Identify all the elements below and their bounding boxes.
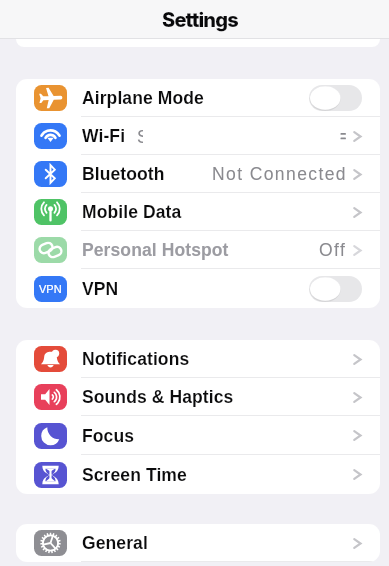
staticText: VPN (82, 279, 119, 299)
staticText: Personal Hotspot (82, 240, 229, 260)
staticText: Focus (82, 426, 135, 446)
other: Bluetooth (34, 161, 67, 187)
button[interactable]: Sounds & Haptics (16, 378, 380, 416)
button[interactable]: Personal Hotspot (16, 231, 380, 269)
staticText: General (82, 533, 148, 553)
staticText: Wi-Fi (82, 126, 126, 146)
button[interactable]: Wi-Fi (16, 117, 380, 155)
button[interactable]: VPN (16, 269, 380, 308)
staticText: Off (319, 240, 347, 260)
staticText: VPN (39, 283, 62, 295)
staticText: Sounds & Haptics (82, 387, 234, 407)
staticText: Notifications (82, 349, 190, 369)
staticText: Mobile Data (82, 202, 182, 222)
other: VPN (34, 276, 67, 302)
staticText: Bluetooth (82, 164, 165, 184)
button[interactable]: Airplane Mode (16, 79, 380, 117)
other: Mobile Data (34, 199, 67, 225)
staticText: Screen Time (82, 465, 187, 485)
other: Personal Hotspot (34, 237, 67, 263)
button[interactable]: Focus (16, 416, 380, 455)
button[interactable]: Mobile Data (16, 193, 380, 231)
button[interactable]: Bluetooth (16, 155, 380, 193)
staticText: Airplane Mode (82, 88, 204, 108)
other: Sounds & Haptics (34, 384, 67, 410)
staticText: S (137, 127, 143, 145)
button[interactable]: Toggle VPN (309, 276, 362, 302)
other: General (34, 530, 67, 556)
button[interactable]: Notifications (16, 340, 380, 378)
staticText: Not Connected (212, 164, 347, 184)
other: Screen Time (34, 462, 67, 488)
button[interactable]: Screen Time (16, 455, 380, 494)
button[interactable]: Toggle Airplane Mode (309, 85, 362, 111)
button[interactable]: General (16, 524, 380, 562)
other: Wi-Fi (34, 123, 67, 149)
staticText: Settings (162, 8, 238, 32)
other: Notifications (34, 346, 67, 372)
other: Focus (34, 423, 67, 449)
other: Airplane Mode (34, 85, 67, 111)
